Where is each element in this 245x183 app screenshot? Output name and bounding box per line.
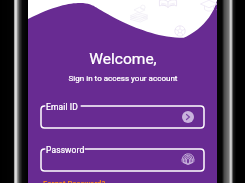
button[interactable]: Email ID: [41, 106, 204, 128]
button[interactable]: Fingerprint login: [182, 154, 194, 166]
staticText: Welcome,: [28, 50, 218, 68]
staticText: Password: [46, 145, 85, 155]
button[interactable]: Forgot Password?: [43, 179, 106, 183]
button[interactable]: Password: [41, 149, 204, 171]
staticText: Email ID: [46, 102, 78, 112]
button[interactable]: Continue: [182, 111, 194, 123]
staticText: Sign in to access your account: [28, 74, 218, 83]
